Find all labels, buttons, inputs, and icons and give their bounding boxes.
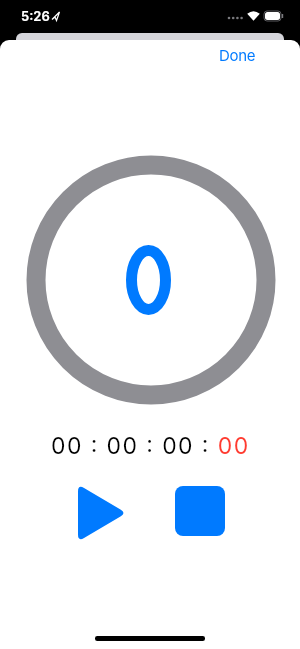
staticText: 00 : 00 : 00 : 00 bbox=[51, 432, 250, 460]
button[interactable] bbox=[74, 486, 126, 540]
staticText: 5:26 bbox=[21, 8, 50, 24]
button[interactable]: Done bbox=[214, 42, 260, 68]
button[interactable] bbox=[175, 486, 225, 536]
staticText: Done bbox=[219, 46, 256, 64]
